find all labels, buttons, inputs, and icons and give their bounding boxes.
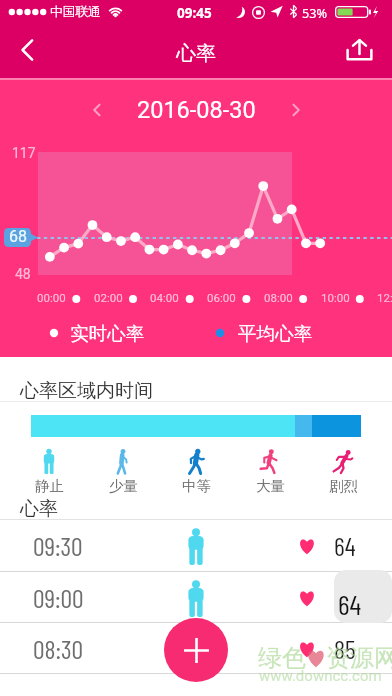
- staticText: 中等: [182, 477, 211, 495]
- button[interactable]: 平均心率: [210, 320, 335, 346]
- staticText: 117: [12, 145, 36, 161]
- staticText: 少量: [109, 477, 138, 495]
- staticText: 08:00: [264, 291, 293, 304]
- staticText: 08:30: [33, 633, 84, 664]
- staticText: 68: [9, 227, 27, 246]
- staticText: 静止: [35, 477, 64, 495]
- button[interactable]: 09:00: [0, 572, 392, 623]
- staticText: 实时心率: [70, 322, 144, 345]
- button[interactable]: Next day: [278, 92, 314, 128]
- button[interactable]: 静止: [19, 448, 79, 495]
- staticText: 心率: [20, 497, 58, 521]
- button[interactable]: 09:30: [0, 520, 392, 571]
- button[interactable]: Back: [4, 26, 52, 74]
- button[interactable]: 少量: [93, 448, 153, 495]
- staticText: 资源网: [326, 643, 392, 673]
- staticText: www.downcc.com: [259, 667, 382, 685]
- staticText: 64: [338, 587, 362, 621]
- staticText: 大量: [256, 477, 285, 495]
- staticText: 心率区域内时间: [20, 379, 153, 403]
- staticText: 剧烈: [329, 477, 358, 495]
- button[interactable]: 中等: [166, 448, 226, 495]
- button[interactable]: 实时心率: [42, 320, 172, 346]
- staticText: 12:00: [377, 291, 392, 304]
- button[interactable]: Share: [335, 26, 383, 74]
- button[interactable]: 08:30: [0, 623, 392, 674]
- staticText: 心率: [0, 41, 392, 66]
- button[interactable]: Add: [164, 618, 228, 682]
- staticText: 85: [334, 633, 356, 664]
- staticText: 09:00: [33, 582, 84, 613]
- staticText: 2016-08-30: [137, 96, 256, 124]
- staticText: 53%: [302, 4, 328, 21]
- button[interactable]: 剧烈: [313, 448, 373, 495]
- button[interactable]: Previous day: [79, 92, 115, 128]
- staticText: 48: [15, 266, 31, 282]
- staticText: 09:30: [33, 530, 83, 561]
- staticText: 64: [334, 582, 356, 613]
- staticText: 00:00: [37, 291, 66, 304]
- staticText: 06:00: [207, 291, 236, 304]
- staticText: 09:45: [177, 4, 212, 22]
- staticText: 10:00: [321, 291, 350, 304]
- staticText: 04:00: [150, 291, 179, 304]
- staticText: 绿色: [258, 643, 306, 673]
- staticText: 02:00: [94, 291, 123, 304]
- button[interactable]: 大量: [240, 448, 300, 495]
- staticText: 64: [334, 530, 356, 561]
- staticText: 中国联通: [50, 4, 101, 20]
- staticText: 平均心率: [238, 322, 312, 345]
